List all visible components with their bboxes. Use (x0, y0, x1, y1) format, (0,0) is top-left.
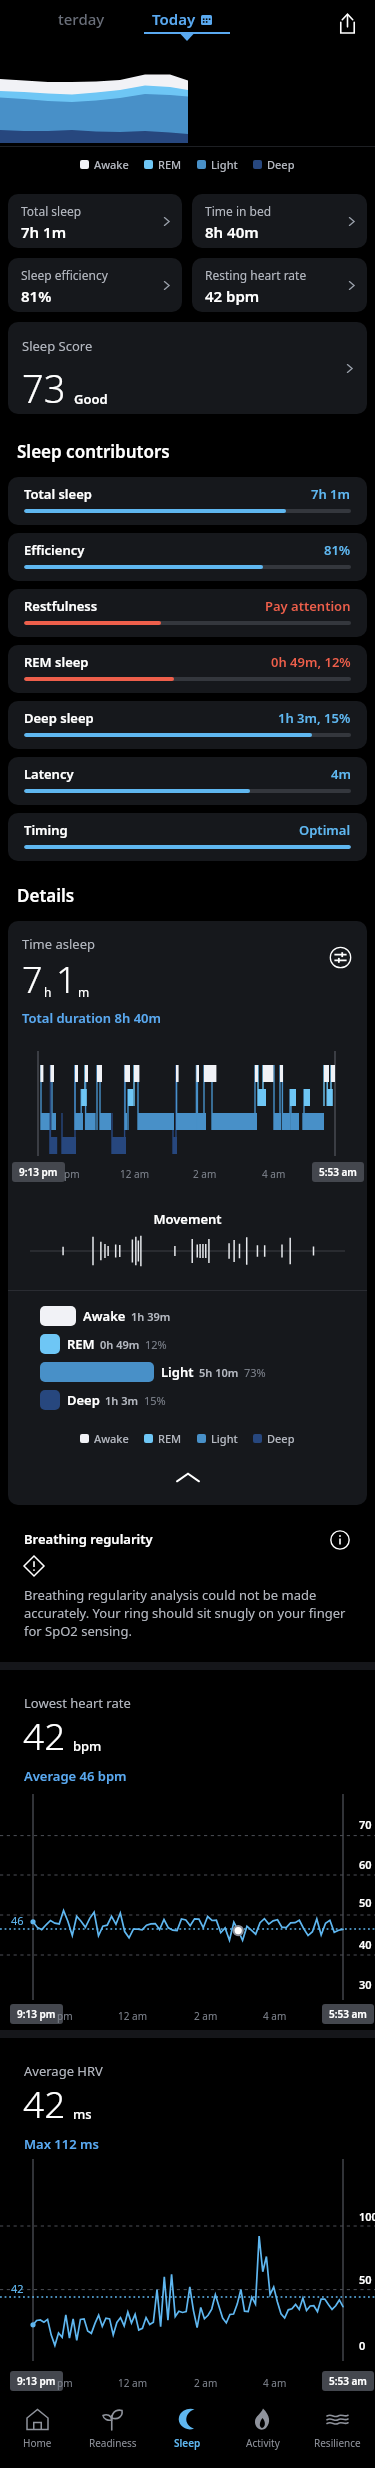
button[interactable]: Adjust graph (326, 943, 354, 971)
staticText: 15% (144, 1393, 166, 1408)
staticText: 2 am (193, 1167, 217, 1181)
staticText: Total duration 8h 40m (22, 1009, 161, 1027)
staticText: Timing (24, 821, 68, 839)
button[interactable]: Sleep (150, 2396, 225, 2468)
staticText: 9:13 pm (17, 2007, 56, 2021)
staticText: 60 (359, 1857, 372, 1872)
staticText: Light (161, 1363, 194, 1381)
staticText: 2 am (194, 2009, 218, 2023)
staticText: REM (158, 1431, 182, 1446)
staticText: 73 (22, 362, 66, 414)
button[interactable]: Info (326, 1526, 354, 1554)
button[interactable]: Today (144, 0, 230, 44)
button[interactable]: Collapse (8, 1464, 367, 1490)
staticText: Deep (67, 1391, 100, 1409)
staticText: Average HRV (24, 2062, 103, 2080)
button[interactable]: Resting heart rate (192, 258, 367, 312)
staticText: ms (73, 2105, 92, 2123)
staticText: pm (64, 1167, 80, 1181)
button[interactable]: Resilience (300, 2396, 375, 2468)
staticText: Average 46 bpm (24, 1767, 127, 1785)
staticText: 8h 40m (205, 222, 259, 242)
staticText: Awake (83, 1307, 126, 1325)
staticText: 5:53 am (329, 2374, 367, 2388)
staticText: 100 (359, 2209, 375, 2224)
staticText: 0 (359, 2338, 366, 2353)
staticText: Pay attention (265, 597, 351, 615)
staticText: bpm (73, 1737, 102, 1755)
staticText: m (78, 984, 90, 1000)
staticText: 42 bpm (205, 286, 260, 306)
button[interactable]: Sleep efficiency (8, 258, 182, 312)
staticText: 4m (331, 765, 351, 783)
staticText: Deep sleep (24, 709, 94, 727)
button[interactable]: Readiness (75, 2396, 150, 2468)
staticText: 42 (23, 2078, 66, 2128)
staticText: Time in bed (205, 203, 272, 219)
staticText: Efficiency (24, 541, 85, 559)
staticText: Latency (24, 765, 74, 783)
button[interactable]: Deep sleep (8, 701, 367, 749)
staticText: pm (57, 2009, 73, 2023)
staticText: Total sleep (21, 203, 82, 219)
button[interactable]: REM sleep (8, 645, 367, 693)
staticText: REM (67, 1335, 95, 1353)
staticText: Readiness (89, 2436, 137, 2450)
staticText: Sleep Score (22, 337, 93, 355)
staticText: pm (57, 2376, 73, 2390)
button[interactable]: Efficiency (8, 533, 367, 581)
staticText: Max 112 ms (24, 2135, 99, 2153)
staticText: Today (152, 9, 196, 29)
staticText: 12 am (120, 1167, 149, 1181)
button[interactable]: Activity (225, 2396, 300, 2468)
staticText: Breathing regularity (24, 1530, 153, 1548)
staticText: 1h 3m, 15% (278, 709, 351, 727)
staticText: 5:53 am (319, 1165, 357, 1179)
staticText: Light (211, 157, 238, 172)
button[interactable]: Share (330, 6, 364, 40)
staticText: Restfulness (24, 597, 98, 615)
staticText: Details (17, 884, 75, 907)
button[interactable]: Home (0, 2396, 75, 2468)
staticText: 12 am (118, 2376, 147, 2390)
button[interactable]: Total sleep (8, 194, 182, 248)
staticText: Awake (94, 157, 129, 172)
staticText: REM (158, 157, 182, 172)
staticText: 12 am (118, 2009, 147, 2023)
staticText: h (44, 984, 52, 1000)
staticText: Light (211, 1431, 238, 1446)
staticText: Breathing regularity analysis could not … (24, 1586, 359, 1640)
staticText: 40 (359, 1937, 372, 1952)
staticText: Home (23, 2436, 52, 2450)
staticText: 1 (56, 955, 77, 1004)
staticText: Optimal (299, 821, 351, 839)
staticText: 4 am (262, 1167, 286, 1181)
button[interactable]: Time in bed (192, 194, 367, 248)
staticText: 81% (21, 286, 52, 306)
button[interactable]: Timing (8, 813, 367, 861)
staticText: terday (58, 9, 105, 29)
staticText: 2 am (194, 2376, 218, 2390)
staticText: Deep (267, 1431, 295, 1446)
staticText: 0h 49m, 12% (271, 653, 351, 671)
staticText: Resilience (314, 2436, 361, 2450)
button[interactable]: Restfulness (8, 589, 367, 637)
staticText: Total sleep (24, 485, 92, 503)
button[interactable]: Sleep Score (8, 322, 367, 414)
staticText: Sleep contributors (17, 440, 170, 463)
staticText: 7 (22, 955, 43, 1004)
button[interactable]: terday (18, 0, 118, 40)
button[interactable]: Total sleep (8, 477, 367, 525)
staticText: 7h 1m (21, 222, 67, 242)
staticText: 46 (11, 1913, 24, 1928)
staticText: 0h 49m (100, 1337, 140, 1352)
button[interactable]: Latency (8, 757, 367, 805)
staticText: REM sleep (24, 653, 89, 671)
staticText: Good (74, 390, 108, 408)
staticText: 30 (359, 1977, 372, 1992)
staticText: Movement (8, 1210, 367, 1228)
staticText: 70 (359, 1817, 372, 1832)
staticText: Activity (246, 2436, 280, 2450)
staticText: 42 (11, 2281, 24, 2296)
staticText: Deep (267, 157, 295, 172)
